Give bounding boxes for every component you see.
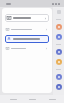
button[interactable]: App 6 xyxy=(56,84,62,90)
button[interactable]: Back xyxy=(6,95,20,103)
button[interactable] xyxy=(5,45,49,52)
button[interactable]: App 4 xyxy=(56,59,62,65)
button[interactable]: App 2 xyxy=(56,34,62,40)
button[interactable]: App 1 xyxy=(56,24,62,30)
button[interactable]: Recents xyxy=(45,95,59,103)
button[interactable]: Home xyxy=(25,95,39,103)
button[interactable] xyxy=(5,26,49,33)
button[interactable]: App 5 xyxy=(56,74,62,80)
button[interactable] xyxy=(5,14,49,22)
button[interactable] xyxy=(5,35,49,43)
button[interactable]: App 3 xyxy=(56,49,62,55)
